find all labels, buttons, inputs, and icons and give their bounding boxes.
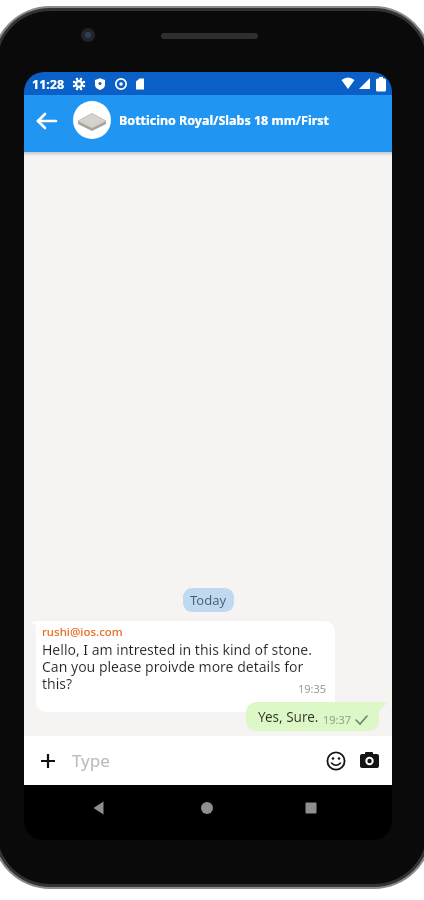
button[interactable] <box>24 736 72 785</box>
staticText: Hello, I am intrested in this kind of st… <box>42 640 312 693</box>
button[interactable] <box>297 794 325 822</box>
staticText: rushi@ios.com <box>42 624 123 640</box>
button[interactable] <box>73 101 111 139</box>
button[interactable] <box>85 794 113 822</box>
staticText: Yes, Sure. <box>258 708 319 726</box>
staticText: 19:37 <box>323 712 352 727</box>
button[interactable] <box>24 92 70 149</box>
button[interactable] <box>322 736 350 785</box>
staticText: Type <box>72 749 110 772</box>
staticText: 11:28 <box>32 76 65 93</box>
button[interactable]: rushi@ios.com <box>36 621 335 712</box>
staticText: 19:35 <box>298 681 327 696</box>
button[interactable] <box>350 736 390 785</box>
staticText: Botticino Royal/Slabs 18 mm/First <box>119 112 329 129</box>
button[interactable]: Today <box>183 588 234 612</box>
staticText: Today <box>190 591 227 609</box>
button[interactable] <box>193 794 221 822</box>
button[interactable]: Yes, Sure. <box>246 702 379 731</box>
